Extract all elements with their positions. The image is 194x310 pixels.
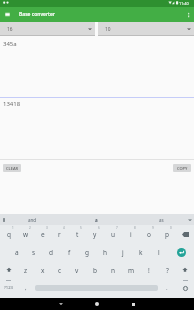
staticText: i	[130, 230, 132, 239]
staticText: p	[165, 230, 169, 239]
staticText: 10	[105, 26, 111, 33]
button[interactable]: COPY	[173, 164, 191, 172]
staticText: m	[128, 266, 135, 275]
button[interactable]: Shift	[176, 261, 194, 279]
button[interactable]: Emoji	[176, 279, 194, 297]
button[interactable]: x	[34, 261, 51, 279]
staticText: b	[93, 266, 97, 275]
staticText: 9	[152, 226, 154, 230]
button[interactable]: l	[150, 243, 168, 261]
button[interactable]: Voice input	[0, 214, 8, 225]
staticText: ?	[166, 266, 169, 275]
staticText: 0	[170, 226, 172, 230]
button[interactable]: g	[78, 243, 96, 261]
button[interactable]: f	[60, 243, 78, 261]
button[interactable]: as	[129, 214, 194, 225]
button[interactable]: m	[122, 261, 140, 279]
staticText: e	[41, 230, 45, 239]
button[interactable]: More options	[182, 7, 194, 22]
staticText: o	[147, 230, 151, 239]
button[interactable]: and	[0, 214, 64, 225]
button[interactable]: s	[25, 243, 42, 261]
staticText: 4	[63, 226, 65, 230]
button[interactable]: Enter	[168, 243, 194, 261]
button[interactable]: Recents	[115, 298, 151, 310]
button[interactable]: d	[42, 243, 60, 261]
staticText: .	[166, 284, 168, 292]
staticText: 2	[29, 226, 31, 230]
button[interactable]: Home	[79, 298, 115, 310]
button[interactable]: 16	[0, 22, 95, 36]
button[interactable]: Open navigation drawer	[0, 7, 15, 22]
button[interactable]: b	[86, 261, 104, 279]
staticText: h	[103, 248, 108, 257]
button[interactable]: ?123	[0, 279, 17, 297]
staticText: s	[32, 248, 36, 257]
button[interactable]: c	[51, 261, 68, 279]
button[interactable]: i	[122, 225, 140, 243]
button[interactable]: a	[64, 214, 129, 225]
button[interactable]: ,	[17, 279, 35, 297]
button[interactable]: j	[114, 243, 132, 261]
button[interactable]: 10	[98, 22, 194, 36]
button[interactable]: !	[140, 261, 158, 279]
button[interactable]: Shift	[0, 261, 17, 279]
staticText: 1	[12, 226, 14, 230]
button[interactable]: n	[104, 261, 122, 279]
staticText: 7	[116, 226, 118, 230]
staticText: 16	[7, 26, 13, 33]
staticText: COPY	[177, 166, 188, 171]
staticText: 11:40	[179, 1, 189, 6]
staticText: n	[111, 266, 116, 275]
button[interactable]: h	[96, 243, 114, 261]
staticText: !	[148, 266, 150, 275]
button[interactable]: CLEAR	[3, 164, 21, 172]
staticText: Base converter	[19, 11, 55, 18]
button[interactable]: k	[132, 243, 150, 261]
button[interactable]: p	[158, 225, 176, 243]
staticText: z	[24, 266, 28, 275]
staticText: 6	[98, 226, 100, 230]
button[interactable]: y	[86, 225, 104, 243]
staticText: 345a	[3, 40, 17, 48]
staticText: q	[7, 230, 11, 239]
staticText: y	[93, 230, 97, 239]
staticText: 3	[46, 226, 48, 230]
staticText: d	[49, 248, 53, 257]
staticText: ?123	[4, 285, 14, 291]
button[interactable]: Back	[43, 298, 79, 310]
button[interactable]: w	[17, 225, 34, 243]
staticText: a	[15, 248, 19, 257]
button[interactable]: ?	[158, 261, 176, 279]
staticText: f	[68, 248, 71, 257]
button[interactable]: Expand suggestions	[186, 214, 194, 225]
button[interactable]: t	[68, 225, 86, 243]
button[interactable]: z	[17, 261, 34, 279]
button[interactable]: Backspace	[176, 225, 194, 243]
staticText: as	[159, 217, 164, 223]
staticText: and	[28, 217, 37, 223]
staticText: 5	[80, 226, 82, 230]
staticText: ,	[25, 284, 27, 292]
button[interactable]: u	[104, 225, 122, 243]
button[interactable]: v	[68, 261, 86, 279]
button[interactable]: o	[140, 225, 158, 243]
staticText: w	[23, 230, 29, 239]
staticText: 13418	[3, 100, 21, 108]
staticText: 8	[134, 226, 136, 230]
button[interactable]: r	[51, 225, 68, 243]
staticText: x	[41, 266, 45, 275]
staticText: v	[75, 266, 79, 275]
staticText: u	[111, 230, 116, 239]
staticText: l	[158, 248, 160, 257]
button[interactable]: a	[8, 243, 25, 261]
staticText: r	[58, 230, 61, 239]
staticText: t	[76, 230, 79, 239]
staticText: j	[122, 248, 124, 257]
staticText: k	[139, 248, 143, 257]
button[interactable]: q	[0, 225, 17, 243]
staticText: g	[85, 248, 89, 257]
button[interactable]: e	[34, 225, 51, 243]
